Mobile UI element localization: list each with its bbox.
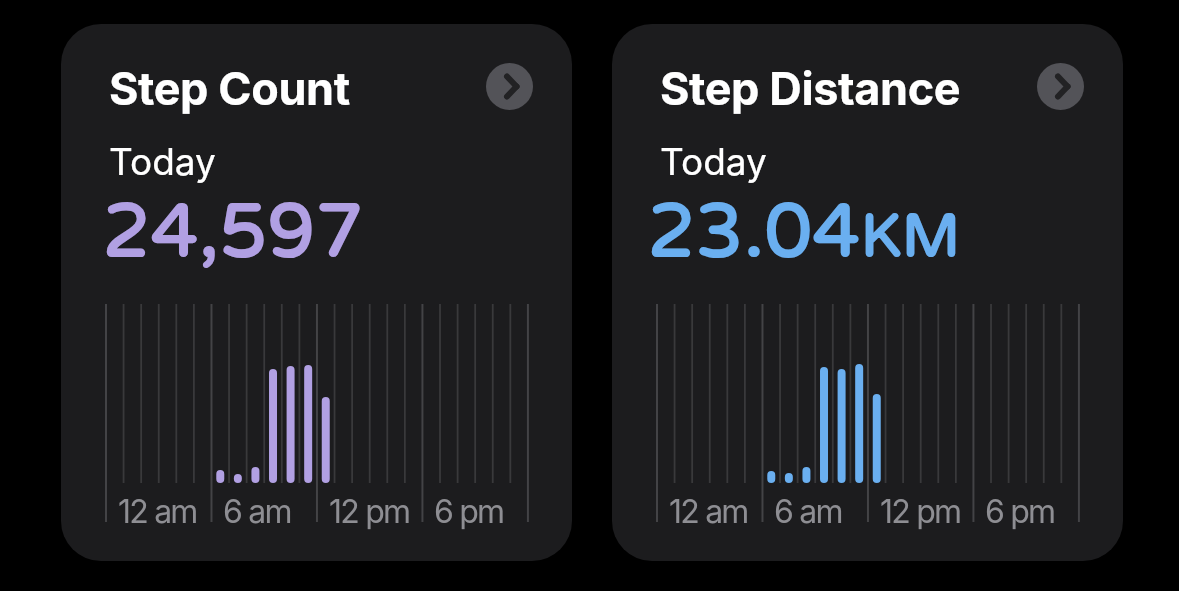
staticText: Today	[109, 139, 216, 184]
button[interactable]: Step Distance	[612, 24, 1123, 561]
staticText: 23.04KM	[648, 187, 962, 277]
staticText: Today	[660, 139, 767, 184]
staticText: 24,597	[103, 187, 365, 277]
staticText: 12 am	[118, 492, 197, 531]
staticText: 12 pm	[329, 492, 410, 531]
staticText: 6 am	[223, 492, 291, 531]
button[interactable]	[1037, 63, 1084, 110]
staticText: 6 pm	[434, 492, 504, 531]
staticText: Step Count	[109, 61, 350, 115]
button[interactable]: Step Count	[61, 24, 572, 561]
staticText: 23.04KM	[648, 187, 962, 277]
staticText: 12 pm	[880, 492, 961, 531]
staticText: 24,597	[103, 187, 365, 277]
staticText: 12 am	[669, 492, 748, 531]
button[interactable]	[486, 63, 533, 110]
staticText: Step Distance	[660, 61, 961, 115]
staticText: 6 pm	[985, 492, 1055, 531]
staticText: 6 am	[774, 492, 842, 531]
